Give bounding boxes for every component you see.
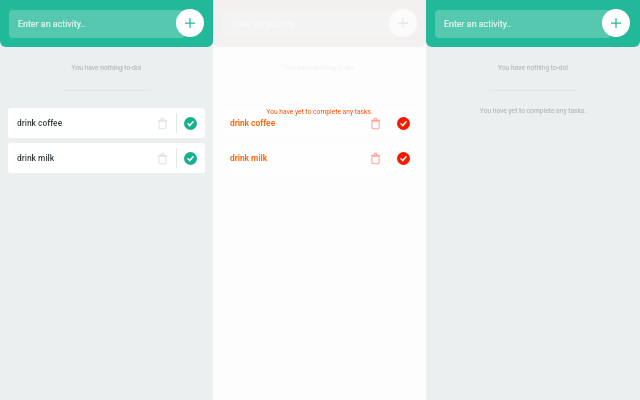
staticText: drink coffee bbox=[17, 118, 63, 128]
button[interactable]: Add activity bbox=[176, 9, 204, 37]
button[interactable]: Delete bbox=[152, 143, 172, 173]
button[interactable]: drink coffee bbox=[221, 108, 418, 138]
staticText: Enter an activity.. bbox=[18, 19, 86, 29]
button[interactable]: drink coffee bbox=[8, 108, 205, 138]
button[interactable]: drink milk bbox=[221, 143, 418, 173]
staticText: You have nothing to-do! bbox=[426, 64, 640, 72]
staticText: drink milk bbox=[230, 153, 268, 163]
button[interactable]: Enter an activity.. bbox=[435, 10, 611, 38]
button[interactable]: Delete bbox=[152, 108, 172, 138]
button[interactable]: Delete bbox=[365, 143, 385, 173]
staticText: drink milk bbox=[17, 153, 55, 163]
button[interactable]: Complete task bbox=[180, 143, 200, 173]
staticText: You have yet to complete any tasks. bbox=[426, 107, 640, 115]
button[interactable]: drink milk bbox=[8, 143, 205, 173]
button[interactable]: Complete task bbox=[393, 143, 413, 173]
button[interactable]: Add activity bbox=[602, 9, 630, 37]
button[interactable]: Add activity bbox=[389, 9, 417, 37]
staticText: You have nothing to-do! bbox=[0, 64, 213, 72]
staticText: Enter an activity.. bbox=[444, 19, 512, 29]
staticText: You have yet to complete any tasks. bbox=[213, 108, 426, 116]
staticText: drink coffee bbox=[230, 118, 276, 128]
button[interactable]: Enter an activity.. bbox=[9, 10, 185, 38]
button[interactable]: Complete task bbox=[393, 108, 413, 138]
button[interactable]: Complete task bbox=[180, 108, 200, 138]
button[interactable]: Delete bbox=[365, 108, 385, 138]
